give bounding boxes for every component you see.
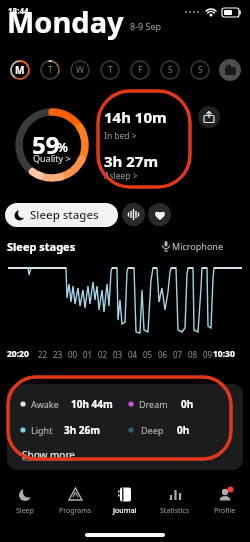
button[interactable] (122, 203, 145, 226)
staticText: T (48, 64, 53, 76)
staticText: 23 (53, 349, 63, 360)
button[interactable]: Sleep (2, 486, 48, 524)
staticText: Asleep > (104, 170, 138, 182)
staticText: Quality > (33, 152, 71, 164)
staticText: 10:30 (213, 348, 235, 360)
staticText: Microphone (172, 240, 223, 252)
button[interactable]: F (129, 59, 151, 81)
staticText: Profile (214, 506, 236, 516)
staticText: 0h (181, 397, 194, 411)
staticText: W (76, 64, 84, 76)
button[interactable]: Journal (102, 486, 148, 524)
button[interactable] (198, 106, 220, 128)
staticText: In bed > (104, 130, 137, 142)
staticText: 3h 26m (64, 423, 101, 437)
staticText: 8-9 Sep (130, 20, 162, 32)
staticText: 03 (113, 349, 123, 360)
button[interactable] (219, 59, 241, 81)
staticText: Deep (141, 424, 164, 436)
staticText: 02 (98, 349, 108, 360)
button[interactable]: W (69, 59, 91, 81)
staticText: 59 (32, 128, 60, 161)
staticText: 08 (188, 349, 198, 360)
staticText: 22 (38, 349, 48, 360)
staticText: 00 (68, 349, 78, 360)
staticText: 04 (128, 349, 138, 360)
staticText: Sleep stages (30, 207, 99, 223)
button[interactable]: Programs (52, 486, 98, 524)
staticText: 0h (177, 423, 190, 437)
button[interactable]: Sleep stages (5, 203, 118, 227)
staticText: Journal (113, 506, 137, 516)
staticText: 10h 44m (71, 397, 113, 411)
button[interactable]: S (159, 59, 181, 81)
staticText: Sleep stages (7, 239, 76, 254)
button[interactable]: 3h 27m (0, 0, 55, 20)
staticText: Dream (139, 398, 168, 410)
staticText: T (108, 64, 113, 76)
button[interactable]: S (189, 59, 211, 81)
staticText: 01 (83, 349, 93, 360)
staticText: Light (31, 424, 53, 436)
staticText: 07 (173, 349, 183, 360)
button[interactable]: Statistics (152, 486, 198, 524)
button[interactable]: T (39, 59, 61, 81)
staticText: Programs (59, 506, 92, 516)
staticText: Sleep (16, 506, 34, 516)
button[interactable]: 14h 10m (0, 0, 63, 20)
staticText: S (168, 64, 173, 76)
staticText: % (57, 139, 68, 155)
button[interactable] (148, 203, 171, 226)
button[interactable]: T (99, 59, 121, 81)
button[interactable]: Profile (202, 486, 248, 524)
staticText: Awake (31, 398, 59, 410)
staticText: F (138, 64, 143, 76)
staticText: Statistics (160, 506, 190, 516)
staticText: 18:44 (8, 5, 29, 16)
staticText: 05 (143, 349, 153, 360)
staticText: Monday (7, 2, 124, 41)
staticText: M (15, 63, 25, 77)
staticText: S (198, 64, 203, 76)
staticText: 09 (203, 349, 213, 360)
staticText: 20:20 (7, 348, 29, 360)
button[interactable]: M (9, 59, 31, 81)
button[interactable]: Show more (0, 0, 53, 14)
staticText: 06 (158, 349, 168, 360)
